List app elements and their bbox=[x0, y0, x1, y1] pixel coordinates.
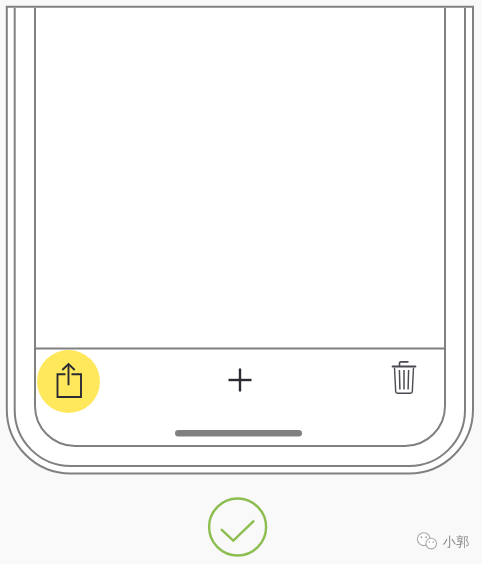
button[interactable]: Add bbox=[214, 354, 266, 406]
button[interactable]: Share bbox=[37, 350, 100, 413]
button[interactable]: Delete bbox=[378, 355, 430, 407]
staticText: 小郭 bbox=[443, 533, 469, 549]
